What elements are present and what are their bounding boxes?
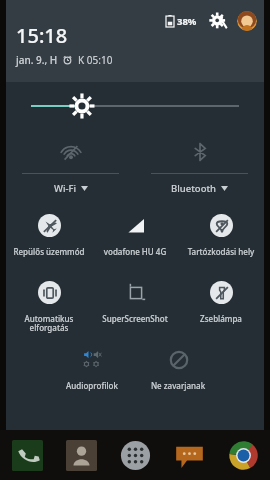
button[interactable]: Phone xyxy=(0,430,54,480)
staticText: Zseblámpa xyxy=(180,313,262,324)
staticText: 38% xyxy=(177,15,197,28)
staticText: 15:18 xyxy=(16,22,68,49)
button[interactable]: Automatikus elforgatás xyxy=(8,271,90,338)
button[interactable]: Messages xyxy=(162,430,216,480)
staticText: K 05:10 xyxy=(78,53,113,67)
button[interactable]: Chrome xyxy=(216,430,270,480)
button[interactable]: Zseblámpa xyxy=(180,271,262,338)
button[interactable]: Audioprofilok xyxy=(51,338,133,405)
button[interactable]: vodafone HU 4G xyxy=(94,204,176,271)
button[interactable]: Brightness xyxy=(6,82,264,130)
button[interactable]: Bluetooth xyxy=(151,130,248,204)
staticText: Bluetooth xyxy=(171,182,217,195)
button[interactable]: SuperScreenShot xyxy=(94,271,176,338)
button[interactable]: Ne zavarjanak xyxy=(137,338,219,405)
button[interactable]: Tartózkodási hely xyxy=(180,204,262,271)
staticText: SuperScreenShot xyxy=(94,313,176,324)
button[interactable]: Repülős üzemmód xyxy=(8,204,90,271)
staticText: Repülős üzemmód xyxy=(8,246,90,257)
staticText: Audioprofilok xyxy=(51,380,133,391)
button[interactable]: Wi-Fi xyxy=(22,130,119,204)
staticText: Wi-Fi xyxy=(54,182,77,195)
staticText: Automatikus elforgatás xyxy=(8,313,90,334)
button[interactable]: Settings xyxy=(208,10,230,32)
button[interactable]: Contacts xyxy=(54,430,108,480)
staticText: Tartózkodási hely xyxy=(180,246,262,257)
button[interactable]: Apps xyxy=(108,430,162,480)
staticText: jan. 9., H xyxy=(16,53,58,67)
staticText: vodafone HU 4G xyxy=(94,246,176,257)
button[interactable]: User profile xyxy=(237,11,257,31)
staticText: Ne zavarjanak xyxy=(137,380,219,391)
